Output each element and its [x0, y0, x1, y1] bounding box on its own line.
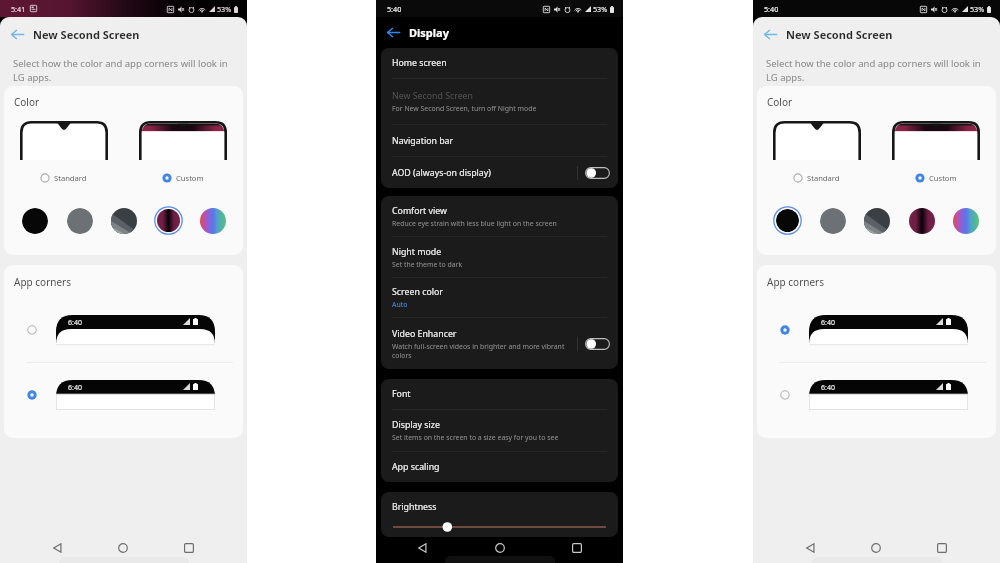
button[interactable]: App scaling — [381, 452, 618, 482]
staticText: New Second Screen — [33, 27, 140, 42]
button[interactable]: Recents — [932, 538, 952, 558]
staticText: Standard — [54, 173, 87, 183]
staticText: Display — [409, 25, 449, 40]
button[interactable]: Color option 3 — [862, 206, 891, 235]
button[interactable]: Custom — [915, 173, 957, 183]
staticText: Comfort view — [392, 205, 447, 217]
staticText: Set items on the screen to a size easy f… — [392, 433, 559, 442]
staticText: 5:40 — [764, 4, 779, 14]
button[interactable]: Home screen — [381, 48, 618, 78]
staticText: 5:40 — [387, 4, 402, 14]
button[interactable]: Home — [490, 538, 510, 558]
staticText: Set the theme to dark — [392, 260, 463, 269]
staticText: New Second Screen — [786, 27, 893, 42]
button[interactable]: 6:40 — [757, 315, 996, 345]
staticText: 5:41 — [11, 4, 26, 14]
staticText: 53% — [593, 4, 608, 14]
button[interactable]: AOD (always-on display) — [381, 157, 618, 188]
button[interactable]: Display size — [381, 410, 618, 451]
staticText: Select how the color and app corners wil… — [13, 57, 239, 84]
staticText: Brightness — [392, 501, 437, 513]
button[interactable]: Screen color — [381, 278, 618, 317]
button[interactable]: Color option 3 — [109, 206, 138, 235]
staticText: AOD (always-on display) — [392, 167, 491, 179]
button[interactable]: Toggle AOD (always-on display) — [585, 167, 610, 179]
staticText: 53% — [217, 4, 232, 14]
staticText: App corners — [767, 275, 825, 289]
staticText: 6:40 — [68, 318, 82, 328]
staticText: Color — [767, 95, 793, 109]
staticText: 6:40 — [68, 383, 82, 393]
button[interactable]: Back — [10, 27, 25, 42]
staticText: Custom — [929, 173, 957, 183]
button[interactable]: Standard — [793, 173, 840, 183]
button[interactable]: Color option 2 — [818, 206, 847, 235]
staticText: New Second Screen — [392, 90, 474, 102]
staticText: 6:40 — [821, 383, 835, 393]
button[interactable]: Recents — [179, 538, 199, 558]
staticText: Custom — [176, 173, 204, 183]
button[interactable]: Back — [47, 538, 67, 558]
button[interactable]: Back — [800, 538, 820, 558]
staticText: Navigation bar — [392, 135, 454, 147]
staticText: Standard — [807, 173, 840, 183]
button[interactable]: Color option 1 — [773, 206, 802, 235]
button[interactable]: Night mode — [381, 237, 618, 277]
button[interactable]: Font — [381, 379, 618, 409]
button[interactable]: Back — [412, 538, 432, 558]
button[interactable]: Back — [0, 17, 247, 52]
button[interactable]: Home — [113, 538, 133, 558]
button[interactable]: Color option 4 — [154, 206, 183, 235]
staticText: 53% — [970, 4, 985, 14]
button[interactable]: Standard — [40, 173, 87, 183]
staticText: Auto — [392, 300, 408, 309]
button[interactable]: Back — [386, 25, 401, 40]
staticText: Home screen — [392, 57, 447, 69]
button[interactable]: Color option 2 — [65, 206, 94, 235]
button[interactable]: Back — [376, 17, 623, 47]
button[interactable]: Video Enhancer — [381, 318, 618, 369]
button[interactable]: 6:40 — [4, 315, 243, 345]
button[interactable]: 6:40 — [757, 380, 996, 410]
staticText: Color — [14, 95, 40, 109]
button[interactable]: Back — [763, 27, 778, 42]
staticText: Night mode — [392, 246, 442, 258]
button[interactable]: Brightness — [381, 492, 618, 537]
staticText: Display size — [392, 419, 440, 431]
button[interactable]: Recents — [567, 538, 587, 558]
staticText: 6:40 — [821, 318, 835, 328]
button[interactable]: Comfort view — [381, 196, 618, 236]
staticText: App scaling — [392, 461, 440, 473]
staticText: Select how the color and app corners wil… — [766, 57, 992, 84]
staticText: Font — [392, 388, 411, 400]
button[interactable]: Color option 4 — [907, 206, 936, 235]
button[interactable]: New Second Screen — [381, 79, 618, 124]
button[interactable]: Color option 1 — [20, 206, 49, 235]
button[interactable]: 6:40 — [4, 380, 243, 410]
button[interactable]: Color option 5 — [198, 206, 227, 235]
staticText: For New Second Screen, turn off Night mo… — [392, 104, 537, 113]
button[interactable]: Navigation bar — [381, 125, 618, 156]
staticText: Reduce eye strain with less blue light o… — [392, 219, 557, 228]
button[interactable]: Back — [753, 17, 1000, 52]
staticText: Video Enhancer — [392, 328, 457, 340]
staticText: Screen color — [392, 286, 443, 298]
button[interactable]: Color option 5 — [951, 206, 980, 235]
staticText: Watch full-screen videos in brighter and… — [392, 342, 571, 360]
button[interactable]: Home — [866, 538, 886, 558]
button[interactable]: Custom — [162, 173, 204, 183]
staticText: App corners — [14, 275, 72, 289]
button[interactable]: Toggle Video Enhancer — [585, 338, 610, 350]
